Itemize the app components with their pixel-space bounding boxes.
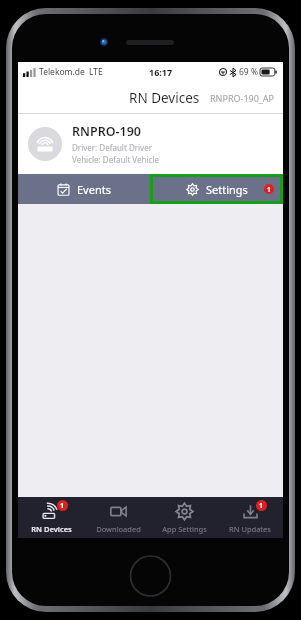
button[interactable]: RNPRO-190 — [18, 114, 283, 174]
staticText: Vehicle: Default Vehicle — [72, 154, 159, 165]
staticText: 1 — [60, 501, 65, 511]
staticText: Settings — [206, 182, 248, 197]
button[interactable]: Settings — [153, 177, 280, 201]
staticText: App Settings — [162, 524, 207, 534]
staticText: 16:17 — [149, 66, 173, 78]
staticText: RN Devices — [129, 89, 200, 107]
staticText: LTE — [89, 66, 103, 78]
staticText: 1 — [259, 501, 264, 511]
staticText: Downloaded — [96, 524, 141, 534]
staticText: RN Updates — [229, 524, 271, 534]
button[interactable]: Events — [18, 174, 150, 204]
staticText: Events — [77, 182, 111, 197]
staticText: RNPRO-190 — [72, 123, 141, 140]
button[interactable]: App Settings — [151, 497, 217, 538]
button[interactable]: 1 — [217, 497, 283, 538]
staticText: RN Devices — [31, 524, 72, 534]
staticText: Driver: Default Driver — [72, 142, 152, 153]
button[interactable]: RNPRO-190_AP — [210, 92, 275, 104]
staticText: 1 — [267, 185, 271, 194]
staticText: Telekom.de — [39, 66, 85, 78]
button[interactable]: 1 — [18, 497, 85, 538]
button[interactable]: Downloaded — [85, 497, 151, 538]
staticText: 69 % — [239, 66, 258, 78]
